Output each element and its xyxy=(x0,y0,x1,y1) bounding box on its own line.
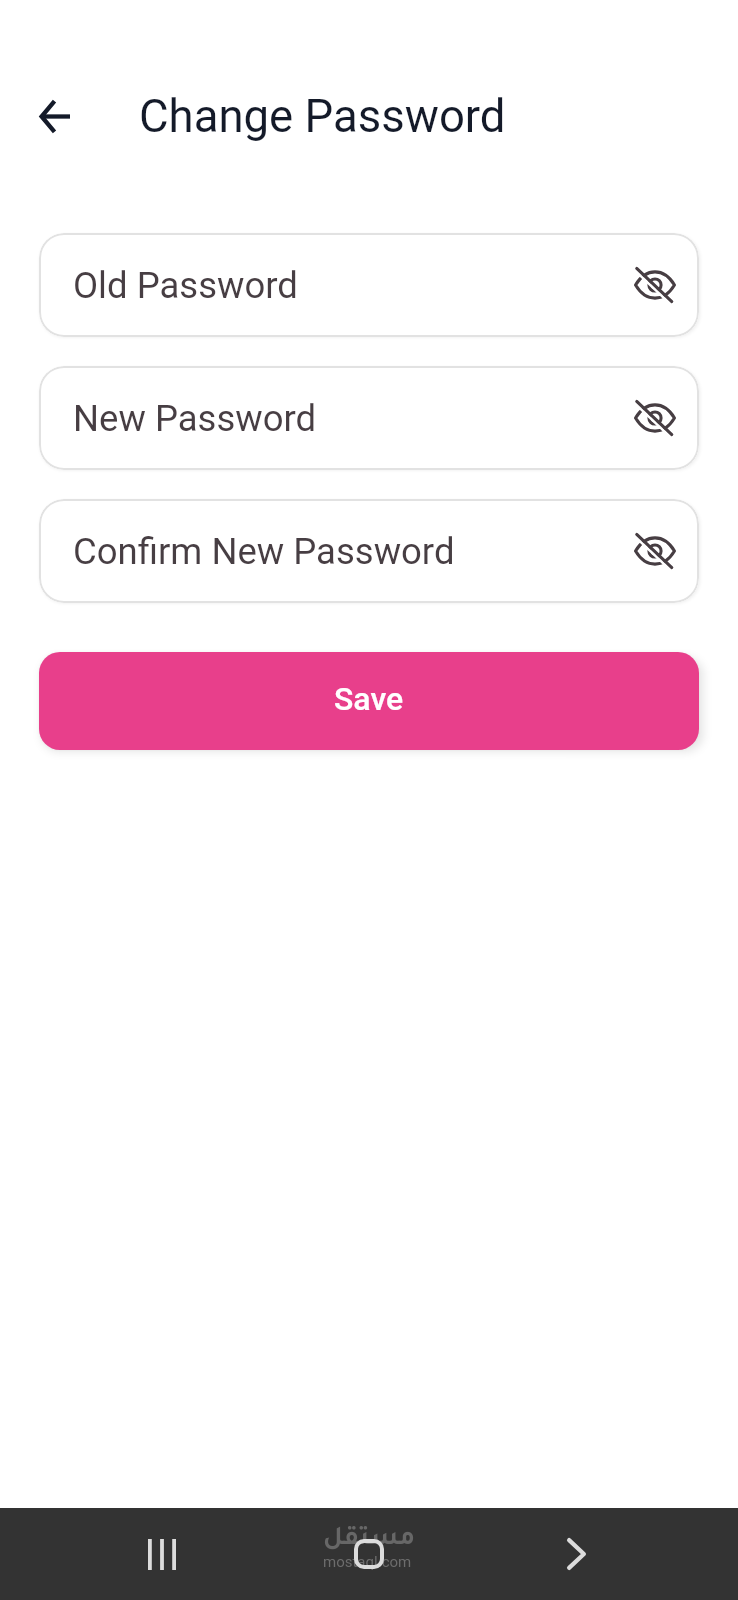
staticText: مستقل xyxy=(323,1527,416,1554)
button[interactable]: Back xyxy=(545,1523,607,1585)
button[interactable]: Confirm New Password xyxy=(39,499,699,603)
button[interactable]: Save xyxy=(39,652,699,750)
button[interactable]: New Password xyxy=(39,366,699,470)
staticText: New Password xyxy=(73,397,317,440)
button[interactable]: Recent apps xyxy=(131,1523,193,1585)
staticText: Old Password xyxy=(73,264,298,307)
button[interactable]: Show password xyxy=(627,257,683,313)
button[interactable]: Back xyxy=(23,85,85,147)
button[interactable]: Old Password xyxy=(39,233,699,337)
staticText: Confirm New Password xyxy=(73,530,455,573)
staticText: mostaql.com xyxy=(323,1553,412,1571)
staticText: Change Password xyxy=(139,90,506,143)
button[interactable]: Show password xyxy=(627,523,683,579)
staticText: Save xyxy=(334,680,404,718)
button[interactable]: Home xyxy=(338,1523,400,1585)
button[interactable]: Show password xyxy=(627,390,683,446)
